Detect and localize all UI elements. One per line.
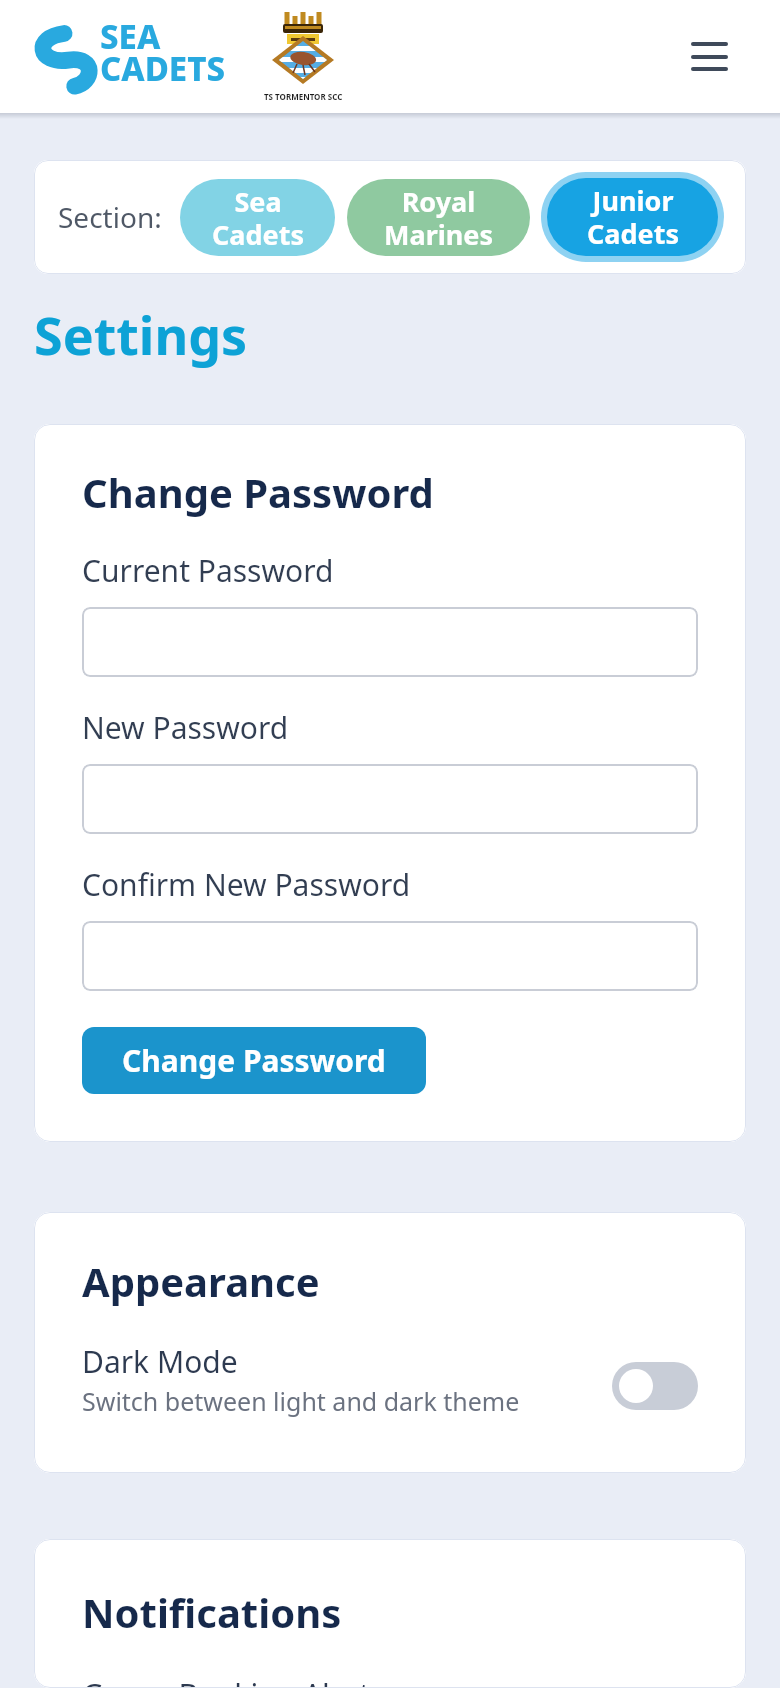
- staticText: Notifications: [82, 1585, 342, 1639]
- staticText: Dark Mode: [82, 1341, 238, 1382]
- button[interactable]: [82, 921, 698, 991]
- button[interactable]: [691, 42, 728, 71]
- staticText: Settings: [34, 299, 248, 370]
- staticText: CADETS: [100, 46, 226, 91]
- button[interactable]: [612, 1362, 698, 1410]
- staticText: Appearance: [82, 1254, 320, 1308]
- staticText: SEA: [100, 14, 161, 59]
- staticText: Section:: [58, 198, 162, 236]
- staticText: Switch between light and dark theme: [82, 1384, 520, 1418]
- staticText: Sea Cadets: [212, 183, 304, 253]
- staticText: New Password: [82, 707, 289, 748]
- staticText: Group Booking Alert: [82, 1674, 370, 1688]
- button[interactable]: Sea Cadets: [180, 179, 335, 256]
- button[interactable]: Change Password: [82, 1027, 426, 1094]
- button[interactable]: Junior Cadets: [547, 178, 718, 256]
- staticText: Confirm New Password: [82, 864, 411, 905]
- staticText: Current Password: [82, 550, 334, 591]
- staticText: TS TORMENTOR SCC: [264, 91, 343, 102]
- staticText: Change Password: [82, 465, 434, 519]
- staticText: Royal Marines: [384, 183, 493, 253]
- button[interactable]: [82, 607, 698, 677]
- staticText: Change Password: [122, 1040, 386, 1081]
- button[interactable]: Royal Marines: [347, 179, 530, 256]
- staticText: Junior Cadets: [587, 182, 679, 252]
- button[interactable]: [82, 764, 698, 834]
